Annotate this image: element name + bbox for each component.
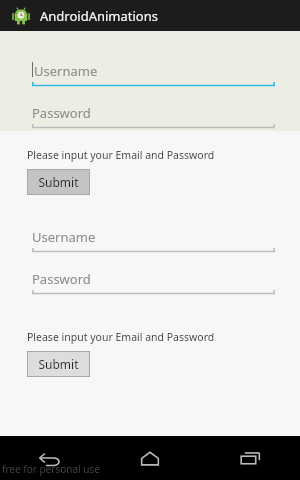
staticText: Please input your Email and Password: [27, 330, 215, 344]
button[interactable]: Back: [0, 436, 100, 480]
staticText: Password: [32, 270, 91, 288]
staticText: AndroidAnimations: [40, 7, 158, 25]
staticText: free for personal use: [2, 462, 100, 476]
button[interactable]: Submit: [27, 351, 90, 377]
button[interactable]: Password: [32, 101, 275, 129]
staticText: Please input your Email and Password: [27, 148, 215, 162]
button[interactable]: Username: [32, 59, 275, 87]
button[interactable]: Password: [32, 267, 275, 295]
staticText: Username: [34, 62, 98, 80]
button[interactable]: Recent apps: [200, 436, 300, 480]
staticText: Submit: [38, 174, 79, 190]
staticText: Submit: [38, 356, 79, 372]
other: App icon: [11, 6, 31, 26]
staticText: Password: [32, 104, 91, 122]
button[interactable]: Home: [100, 436, 200, 480]
button[interactable]: Submit: [27, 169, 90, 195]
staticText: Username: [32, 228, 96, 246]
button[interactable]: Username: [32, 225, 275, 253]
